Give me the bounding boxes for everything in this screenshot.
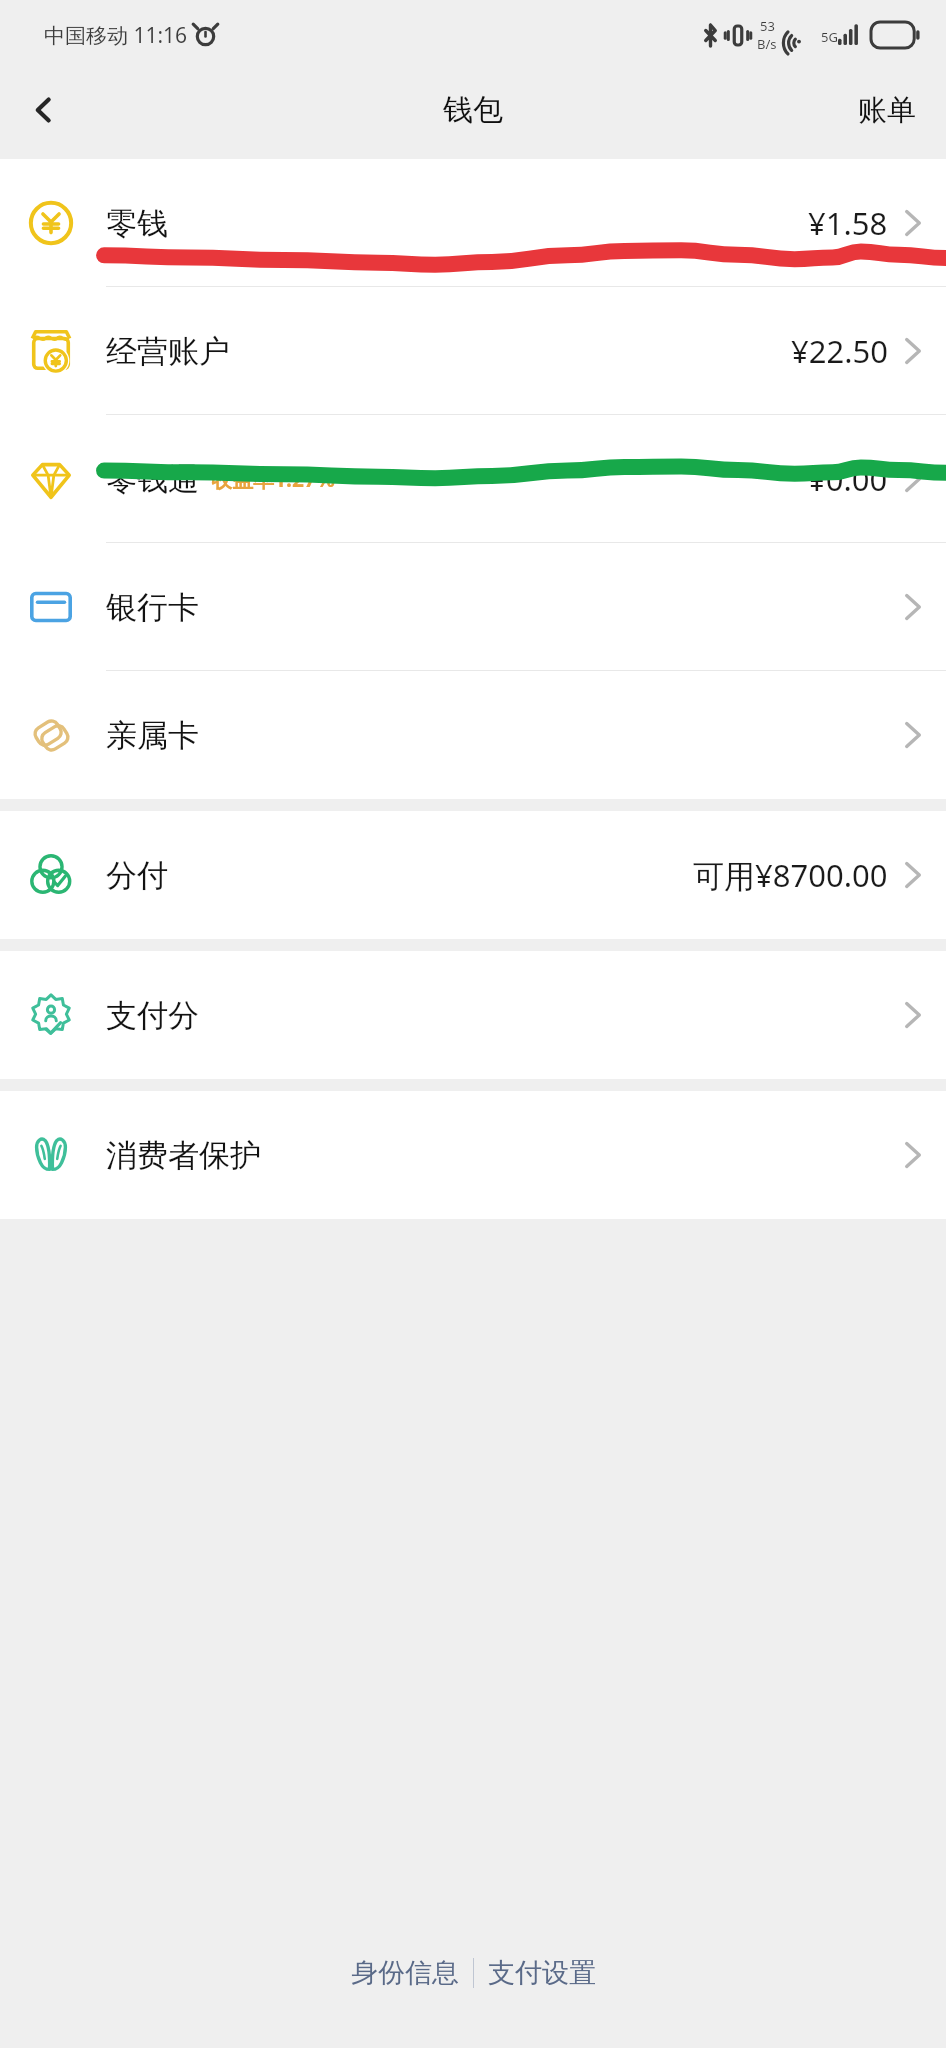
staticText: ¥0.00: [808, 458, 888, 500]
staticText: 53: [760, 17, 775, 35]
button[interactable]: 银行卡: [0, 543, 946, 671]
staticText: 中国移动 11:16: [44, 21, 188, 50]
button[interactable]: 支付分: [0, 951, 946, 1079]
staticText: 零钱: [106, 204, 168, 243]
button[interactable]: 零钱: [0, 159, 946, 287]
staticText: 零钱通: [106, 460, 199, 499]
button[interactable]: 消费者保护: [0, 1091, 946, 1219]
staticText: 消费者保护: [106, 1136, 261, 1175]
button[interactable]: 分付: [0, 811, 946, 939]
staticText: 身份信息: [351, 1956, 459, 1990]
staticText: 钱包: [443, 91, 503, 129]
button[interactable]: 返回: [14, 80, 74, 140]
staticText: 亲属卡: [106, 716, 199, 755]
staticText: 分付: [106, 856, 168, 895]
button[interactable]: 零钱通: [0, 415, 946, 543]
staticText: 银行卡: [106, 588, 199, 627]
button[interactable]: 支付设置: [474, 1946, 610, 2000]
staticText: 5G: [821, 28, 838, 46]
staticText: 支付分: [106, 996, 199, 1035]
staticText: ¥1.58: [808, 202, 888, 244]
staticText: 收益率1.27%: [211, 465, 335, 494]
staticText: 账单: [858, 92, 916, 129]
button[interactable]: 经营账户: [0, 287, 946, 415]
staticText: 支付设置: [488, 1956, 596, 1990]
staticText: 经营账户: [106, 332, 230, 371]
button[interactable]: 身份信息: [337, 1946, 473, 2000]
staticText: ¥22.50: [791, 330, 888, 372]
button[interactable]: 账单: [850, 84, 924, 137]
staticText: 可用¥8700.00: [693, 854, 888, 896]
button[interactable]: 亲属卡: [0, 671, 946, 799]
staticText: B/s: [757, 35, 777, 53]
